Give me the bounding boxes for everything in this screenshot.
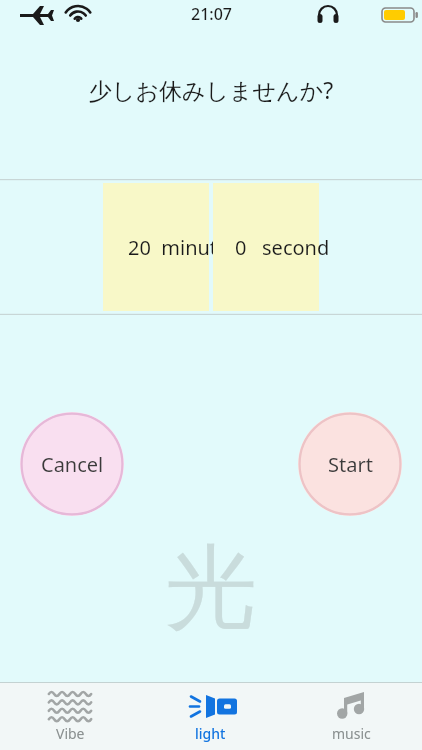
staticText: 光 <box>165 530 257 646</box>
button[interactable]: 0 second <box>213 183 319 311</box>
button[interactable]: Vibe <box>0 683 140 750</box>
staticText: Start <box>328 451 373 478</box>
other: light <box>188 690 234 723</box>
button[interactable]: music <box>281 683 422 750</box>
staticText: Cancel <box>41 451 104 478</box>
staticText: 0 second <box>235 234 330 261</box>
staticText: 21:07 <box>191 3 232 25</box>
button[interactable]: 20 minute <box>103 183 209 311</box>
button[interactable]: Cancel <box>20 412 124 516</box>
staticText: light <box>195 724 226 743</box>
button[interactable]: Start <box>298 412 402 516</box>
button[interactable]: light <box>140 683 281 750</box>
staticText: 少しお休みしませんか? <box>0 74 422 105</box>
staticText: music <box>332 724 371 743</box>
staticText: 20 minute <box>128 234 229 261</box>
staticText: Vibe <box>56 724 85 743</box>
